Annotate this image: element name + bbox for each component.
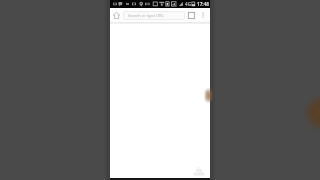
button[interactable]: Search or type URL xyxy=(123,11,185,20)
staticText: 4G xyxy=(185,1,191,7)
button[interactable]: Home xyxy=(111,10,121,20)
button[interactable]: Tabs xyxy=(186,10,197,21)
staticText: 17:48 xyxy=(197,1,210,7)
staticText: Search or type URL xyxy=(128,13,164,18)
button[interactable]: More options xyxy=(198,10,208,20)
